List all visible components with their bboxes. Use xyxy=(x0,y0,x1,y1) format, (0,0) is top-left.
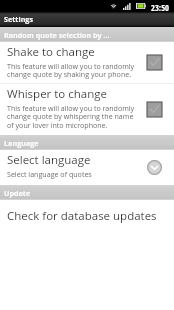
staticText: Language xyxy=(4,138,39,148)
button[interactable]: Select language xyxy=(0,150,174,185)
staticText: Update xyxy=(4,188,31,198)
button[interactable]: Shake to change xyxy=(0,42,174,83)
button[interactable]: Expand language list xyxy=(146,159,163,176)
staticText: 23:50 xyxy=(151,2,170,14)
staticText: Select language xyxy=(7,152,91,168)
button[interactable]: Check for database updates xyxy=(0,200,174,234)
button[interactable]: Toggle setting xyxy=(146,101,163,118)
staticText: This feature will allow you to randomly … xyxy=(7,103,135,130)
staticText: Random quote selection by ... xyxy=(4,30,110,40)
button[interactable]: Whisper to change xyxy=(0,84,174,135)
staticText: Select language of quotes xyxy=(7,169,92,179)
button[interactable]: Toggle setting xyxy=(146,54,163,71)
staticText: Whisper to change xyxy=(7,86,108,102)
staticText: Settings xyxy=(4,14,33,24)
staticText: Check for database updates xyxy=(7,208,157,224)
staticText: Shake to change xyxy=(7,44,95,60)
staticText: This feature will allow you to randomly … xyxy=(7,61,135,79)
